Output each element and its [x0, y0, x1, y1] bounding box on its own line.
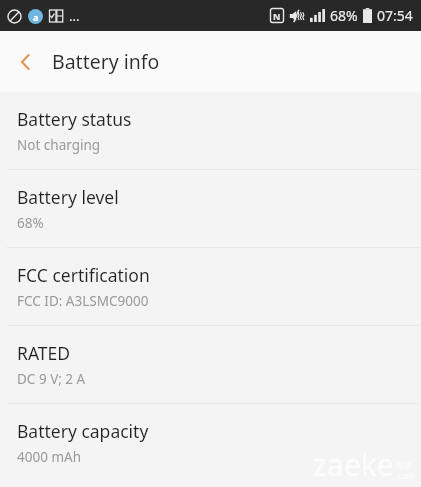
staticText: 68%: [17, 214, 44, 232]
button[interactable]: FCC certification: [0, 248, 421, 325]
button[interactable]: Navigate up: [8, 44, 44, 80]
button[interactable]: RATED: [0, 326, 421, 403]
staticText: Battery status: [17, 107, 132, 131]
button[interactable]: Battery capacity: [0, 404, 421, 481]
staticText: Battery capacity: [17, 419, 149, 443]
staticText: FCC ID: A3LSMC9000: [17, 292, 149, 310]
staticText: Battery level: [17, 185, 119, 209]
staticText: Battery info: [52, 48, 160, 75]
staticText: 07:54: [377, 6, 413, 25]
staticText: a: [33, 11, 39, 23]
staticText: Not charging: [17, 136, 101, 154]
staticText: RATED: [17, 341, 71, 365]
staticText: DC 9 V; 2 A: [17, 370, 86, 388]
staticText: N: [273, 10, 281, 22]
staticText: FCC certification: [17, 263, 150, 287]
staticText: ...: [69, 7, 80, 25]
staticText: 68%: [330, 6, 358, 25]
staticText: 4000 mAh: [17, 448, 81, 466]
button[interactable]: Battery level: [0, 170, 421, 247]
button[interactable]: Battery status: [0, 92, 421, 169]
